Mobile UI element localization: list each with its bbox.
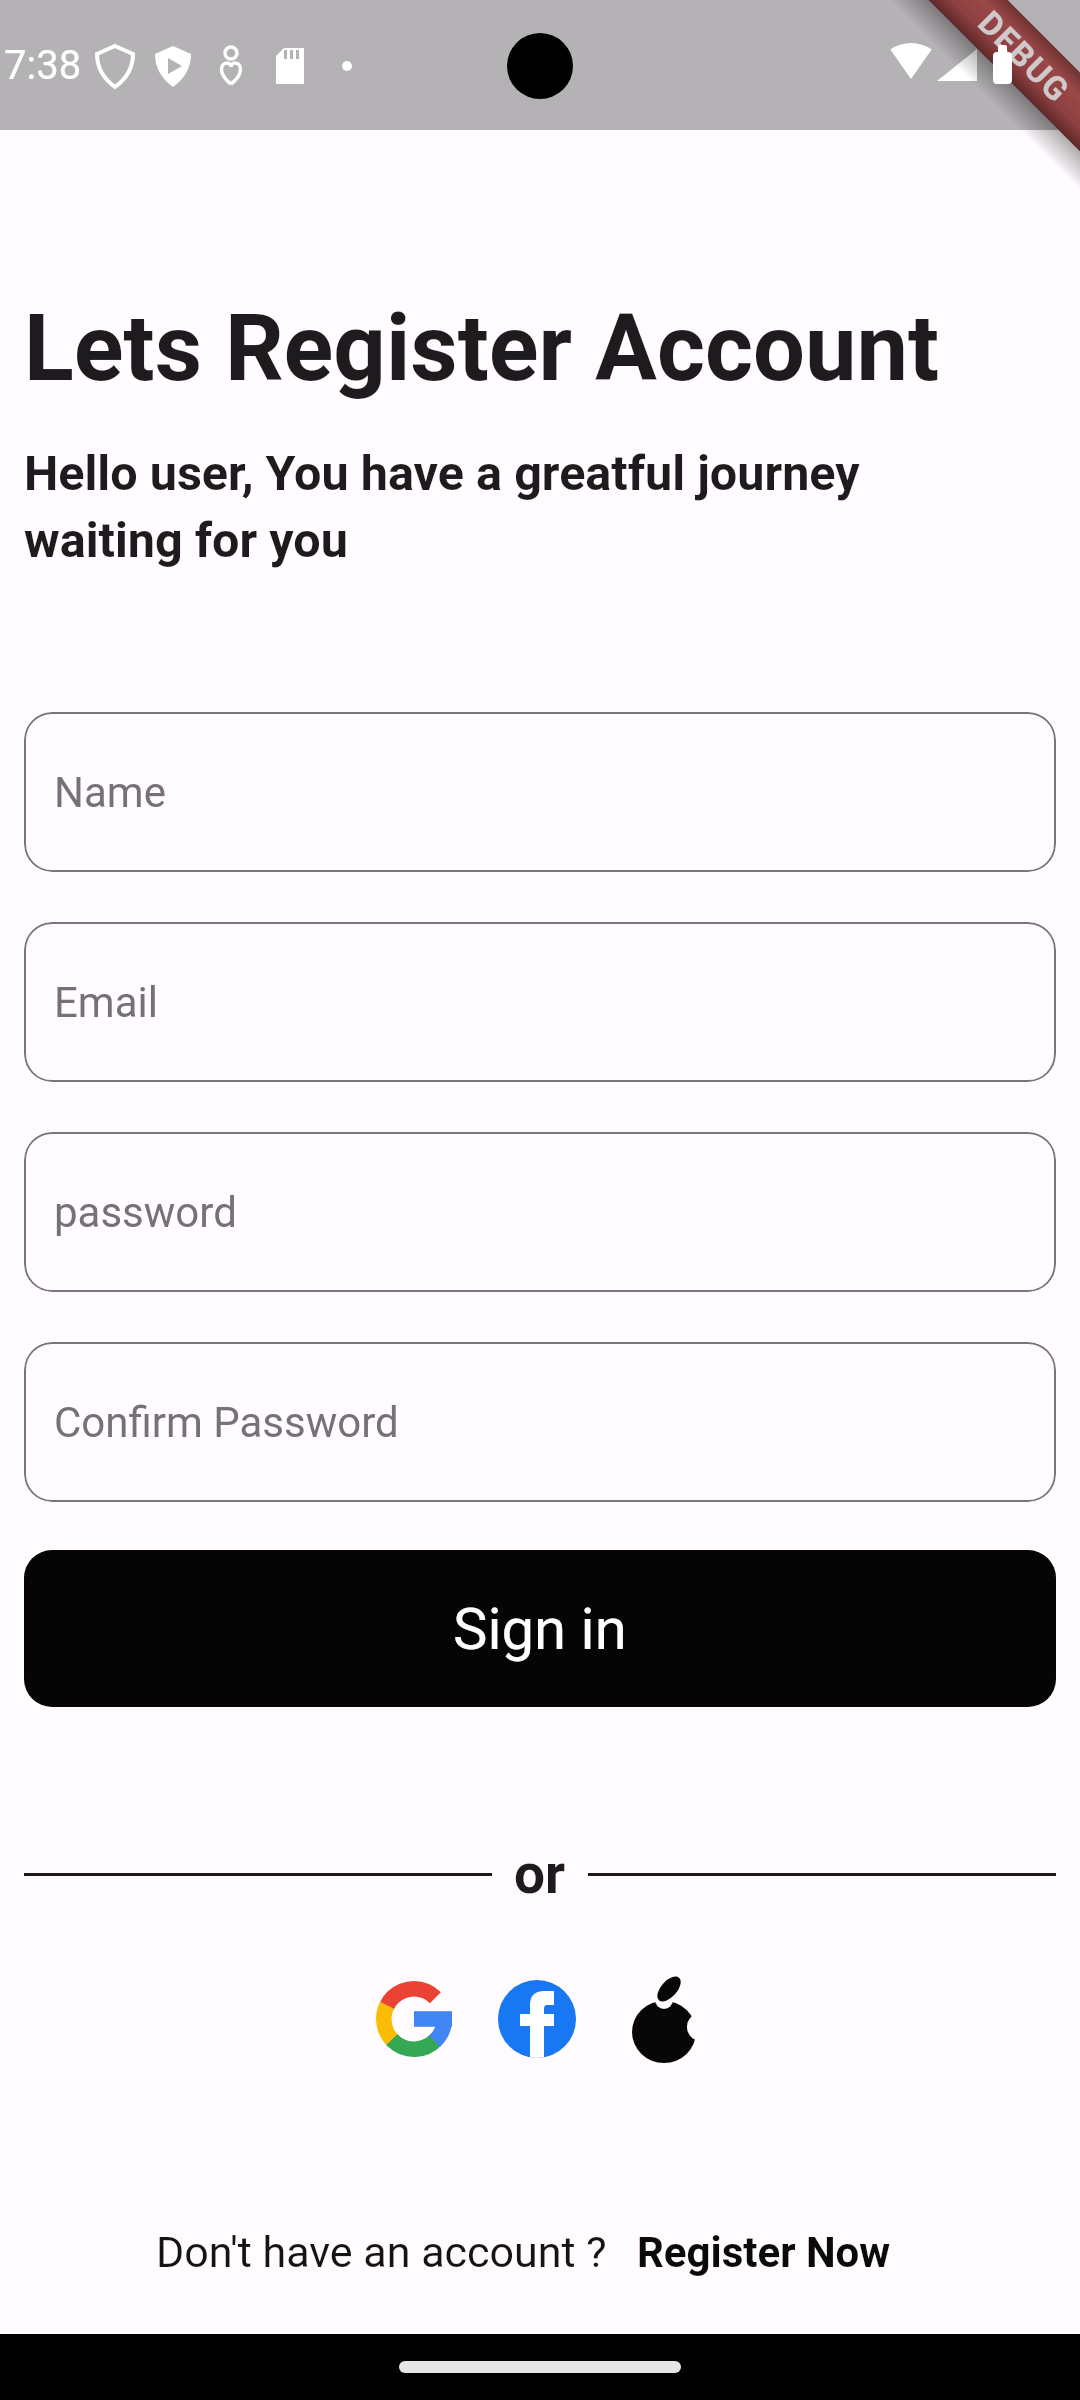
staticText: Hello user, You have a greatful journey … xyxy=(24,445,860,569)
staticText: Don't have an account ? xyxy=(156,2227,607,2277)
button[interactable]: Email xyxy=(24,922,1056,1082)
staticText: DEBUG xyxy=(970,3,1078,110)
staticText: Confirm Password xyxy=(54,1398,399,1447)
button[interactable]: Sign in xyxy=(24,1550,1056,1707)
button[interactable] xyxy=(498,1980,576,2058)
staticText: Name xyxy=(54,768,166,817)
staticText: 7:38 xyxy=(4,42,82,89)
staticText: or xyxy=(514,1842,566,1906)
button[interactable] xyxy=(376,1981,452,2057)
button[interactable] xyxy=(624,1975,704,2063)
staticText: Register Now xyxy=(637,2228,891,2277)
button[interactable]: Confirm Password xyxy=(24,1342,1056,1502)
staticText: Lets Register Account xyxy=(24,295,940,403)
button[interactable]: Don't have an account ? xyxy=(0,2227,1063,2277)
button[interactable]: Name xyxy=(24,712,1056,872)
staticText: Email xyxy=(54,978,158,1027)
button[interactable]: password xyxy=(24,1132,1056,1292)
staticText: Sign in xyxy=(453,1595,627,1663)
staticText: password xyxy=(54,1188,237,1237)
